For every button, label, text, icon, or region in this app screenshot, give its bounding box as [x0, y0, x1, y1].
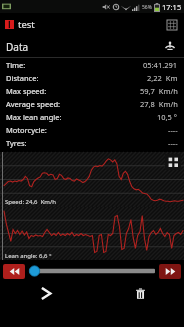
- staticText: Speed: 24,6 Km/h: [5, 198, 56, 206]
- button[interactable]: Average speed:: [0, 97, 184, 110]
- button[interactable]: Max lean angle:: [0, 110, 184, 123]
- button[interactable]: Delete: [130, 283, 150, 303]
- staticText: 56%: [142, 4, 152, 11]
- button[interactable]: GPS: [161, 38, 179, 56]
- staticText: Time:: [6, 60, 26, 70]
- button[interactable]: Grid view: [164, 17, 180, 33]
- staticText: 27,8 Km/h: [140, 99, 178, 109]
- button[interactable]: Tyres:: [0, 136, 184, 149]
- button[interactable]: Time:: [0, 58, 184, 71]
- staticText: ----: [168, 125, 178, 135]
- button[interactable]: Speed: 24,6 Km/h: [0, 152, 184, 207]
- button[interactable]: Lean angle: 6,6 °: [0, 207, 184, 260]
- staticText: ----: [168, 138, 178, 148]
- staticText: Max lean angle:: [6, 112, 62, 122]
- staticText: Motorcycle:: [6, 125, 47, 135]
- staticText: Lean angle: 6,6 °: [5, 252, 52, 260]
- button[interactable]: Forward: [159, 264, 181, 279]
- staticText: 59,7 Km/h: [140, 86, 178, 96]
- button[interactable]: Distance:: [0, 71, 184, 84]
- staticText: Max speed:: [6, 86, 47, 96]
- button[interactable]: Rewind: [3, 264, 25, 279]
- staticText: Average speed:: [6, 99, 61, 109]
- staticText: Data: [6, 40, 29, 54]
- button[interactable]: Motorcycle:: [0, 123, 184, 136]
- button[interactable]: Share: [36, 283, 56, 303]
- button[interactable]: Fullscreen: [165, 154, 181, 170]
- staticText: 10,5 °: [157, 112, 178, 122]
- staticText: Tyres:: [6, 138, 27, 148]
- staticText: 17:15: [162, 2, 182, 12]
- staticText: Distance:: [6, 73, 39, 83]
- button[interactable]: [29, 262, 155, 280]
- button[interactable]: Max speed:: [0, 84, 184, 97]
- staticText: 05:41.291: [143, 60, 178, 70]
- staticText: test: [18, 18, 35, 31]
- staticText: 2,22 Km: [147, 73, 178, 83]
